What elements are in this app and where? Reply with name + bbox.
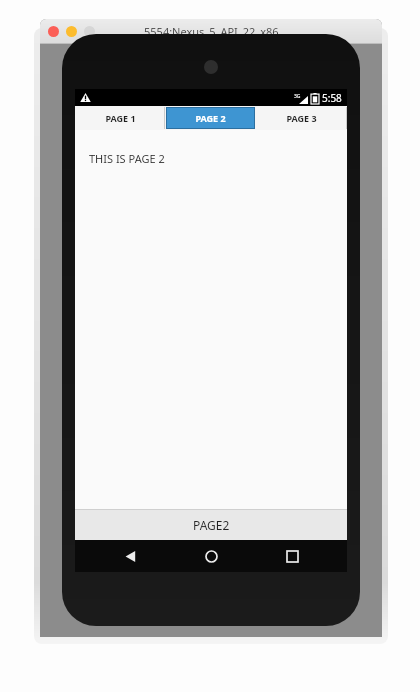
button[interactable]: Recents [266, 540, 318, 572]
button[interactable]: PAGE 1 [75, 107, 165, 129]
staticText: PAGE 1 [105, 112, 136, 124]
staticText: 5554:Nexus_5_API_22_x86 [144, 24, 279, 39]
button[interactable]: PAGE2 [75, 509, 347, 540]
staticText: 5:58 [322, 91, 342, 105]
button[interactable]: Zoom [84, 26, 95, 37]
button[interactable]: Close [48, 26, 59, 37]
button[interactable]: PAGE 2 [166, 107, 255, 129]
staticText: THIS IS PAGE 2 [89, 151, 165, 166]
button[interactable]: Minimize [66, 26, 77, 37]
staticText: PAGE 2 [195, 112, 226, 124]
button[interactable]: Home [185, 540, 237, 572]
button[interactable]: PAGE 3 [256, 107, 347, 129]
staticText: 3G [294, 93, 301, 100]
staticText: PAGE 3 [286, 112, 317, 124]
button[interactable]: Back [104, 540, 156, 572]
staticText: PAGE2 [193, 517, 230, 533]
